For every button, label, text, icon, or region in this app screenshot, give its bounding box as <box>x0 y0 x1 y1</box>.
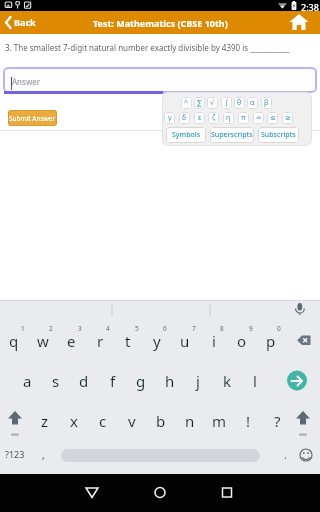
button[interactable]: Answer <box>3 67 317 93</box>
staticText: ∑ <box>197 99 202 107</box>
staticText: o <box>237 331 247 351</box>
staticText: i <box>212 331 216 351</box>
button[interactable]: h <box>156 362 184 400</box>
staticText: n <box>185 411 195 431</box>
button[interactable]: β <box>261 97 272 109</box>
button[interactable]: y <box>143 322 171 360</box>
button[interactable]: t <box>114 322 142 360</box>
button[interactable]: r <box>86 322 114 360</box>
staticText: b <box>156 411 166 431</box>
button[interactable]: ε <box>194 112 205 124</box>
button[interactable]: δ <box>179 112 190 124</box>
staticText: 5 <box>135 324 139 333</box>
staticText: ^ <box>184 98 189 108</box>
button[interactable] <box>290 404 316 434</box>
staticText: 2:38 <box>301 1 319 12</box>
button[interactable]: p <box>257 322 285 360</box>
button[interactable] <box>2 404 28 434</box>
staticText: g <box>136 371 146 391</box>
button[interactable]: l <box>241 362 269 400</box>
button[interactable] <box>72 474 112 512</box>
button[interactable]: f <box>99 362 127 400</box>
staticText: w <box>37 331 49 351</box>
staticText: 0 <box>277 324 281 333</box>
button[interactable]: ∑ <box>194 97 205 109</box>
staticText: Back <box>14 16 36 28</box>
staticText: Subscripts <box>261 130 296 140</box>
button[interactable]: d <box>70 362 98 400</box>
button[interactable]: √ <box>207 97 218 109</box>
button[interactable]: w <box>29 322 57 360</box>
staticText: e <box>67 331 76 351</box>
button[interactable] <box>207 474 247 512</box>
button[interactable]: n <box>176 402 204 440</box>
staticText: ζ <box>212 113 216 123</box>
button[interactable]: b <box>147 402 175 440</box>
staticText: β <box>264 98 269 108</box>
button[interactable]: x <box>60 402 88 440</box>
staticText: Symbols <box>172 130 201 140</box>
button[interactable]: c <box>89 402 117 440</box>
button[interactable]: m <box>205 402 233 440</box>
button[interactable]: a <box>13 362 41 400</box>
button[interactable]: γ <box>164 112 175 124</box>
button[interactable]: ∞ <box>253 112 264 124</box>
button[interactable]: u <box>171 322 199 360</box>
staticText: Test: Mathematics (CBSE 10th) <box>93 17 228 29</box>
button[interactable]: e <box>57 322 85 360</box>
staticText: k <box>223 371 232 391</box>
staticText: Submit Answer <box>9 114 56 123</box>
button[interactable]: ! <box>234 402 262 440</box>
button[interactable]: Back <box>0 11 44 34</box>
staticText: 7 <box>192 324 196 333</box>
button[interactable] <box>298 447 314 463</box>
button[interactable]: ^ <box>181 97 192 109</box>
button[interactable] <box>284 11 314 34</box>
staticText: z <box>41 411 49 431</box>
button[interactable]: Superscripts <box>210 127 254 143</box>
button[interactable] <box>140 474 180 512</box>
staticText: , <box>42 448 45 462</box>
button[interactable]: . <box>271 436 299 474</box>
button[interactable]: θ <box>234 97 245 109</box>
button[interactable]: z <box>31 402 59 440</box>
button[interactable]: ≥ <box>282 112 293 124</box>
staticText: 1 <box>21 324 25 333</box>
button[interactable] <box>290 326 318 356</box>
staticText: η <box>226 113 231 123</box>
button[interactable]: , <box>29 436 57 474</box>
staticText: 9 <box>249 324 253 333</box>
button[interactable]: ? <box>263 402 291 440</box>
staticText: 3. The smallest 7-digit natural number e… <box>5 42 290 53</box>
button[interactable]: α <box>247 97 258 109</box>
button[interactable]: Submit Answer <box>8 110 57 126</box>
staticText: Superscripts <box>211 130 253 140</box>
button[interactable]: ζ <box>208 112 219 124</box>
staticText: 6 <box>163 324 167 333</box>
staticText: d <box>79 371 89 391</box>
button[interactable]: o <box>228 322 256 360</box>
staticText: l <box>253 371 257 391</box>
staticText: δ <box>182 113 187 123</box>
staticText: c <box>99 411 107 431</box>
button[interactable] <box>292 301 308 317</box>
staticText: 4 <box>106 324 110 333</box>
button[interactable]: j <box>184 362 212 400</box>
button[interactable]: g <box>127 362 155 400</box>
button[interactable]: Subscripts <box>258 127 299 143</box>
button[interactable] <box>286 370 308 392</box>
button[interactable]: q <box>0 322 28 360</box>
button[interactable]: η <box>223 112 234 124</box>
staticText: y <box>153 331 161 351</box>
button[interactable]: ≤ <box>267 112 278 124</box>
button[interactable]: Symbols <box>166 127 206 143</box>
button[interactable]: π <box>238 112 249 124</box>
button[interactable]: i <box>200 322 228 360</box>
button[interactable]: s <box>42 362 70 400</box>
staticText: 2 <box>49 324 53 333</box>
button[interactable]: k <box>213 362 241 400</box>
button[interactable]: ∫ <box>221 97 232 109</box>
button[interactable]: v <box>118 402 146 440</box>
button[interactable]: ?123 <box>1 435 29 473</box>
